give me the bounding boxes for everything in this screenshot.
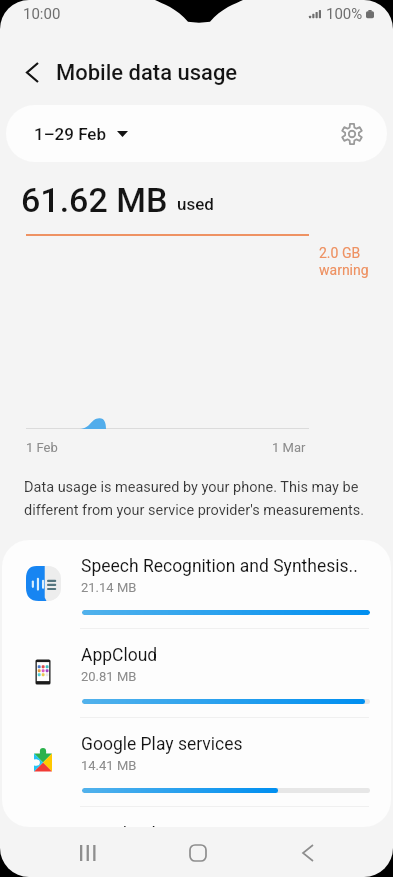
staticText: Speech Recognition and Synthesis.. xyxy=(81,556,358,577)
staticText: 2.0 GB warning xyxy=(319,245,369,279)
staticText: 10:00 xyxy=(23,5,61,23)
staticText: Data usage is measured by your phone. Th… xyxy=(24,479,372,519)
staticText: 20.81 MB xyxy=(81,669,137,684)
button[interactable]: Back xyxy=(253,829,363,877)
staticText: 1 Feb xyxy=(26,440,58,455)
staticText: Google Play Store xyxy=(81,824,219,827)
staticText: 21.14 MB xyxy=(81,580,137,595)
button[interactable]: AppCloud xyxy=(2,629,391,718)
button[interactable]: Google Play services xyxy=(2,718,391,807)
staticText: Mobile data usage xyxy=(56,60,238,86)
button[interactable]: Recent apps xyxy=(33,829,143,877)
button[interactable]: Speech Recognition and Synthesis.. xyxy=(2,540,391,629)
staticText: 14.41 MB xyxy=(81,758,137,773)
button[interactable]: Google Play Store xyxy=(2,807,391,827)
button[interactable]: Navigate up xyxy=(10,50,54,94)
staticText: used xyxy=(177,194,214,214)
staticText: Google Play services xyxy=(81,734,243,755)
button[interactable]: Settings xyxy=(331,113,373,155)
staticText: 61.62 MB xyxy=(21,180,168,220)
staticText: 100% xyxy=(326,5,363,23)
button[interactable]: 1–29 Feb xyxy=(25,117,137,151)
button[interactable]: Home xyxy=(143,829,253,877)
staticText: 1 Mar xyxy=(272,440,306,455)
staticText: AppCloud xyxy=(81,645,158,666)
staticText: 1–29 Feb xyxy=(34,124,106,144)
